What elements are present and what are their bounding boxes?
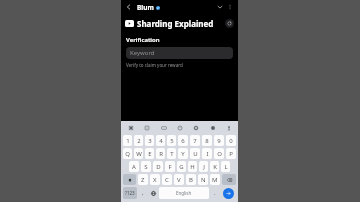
staticText: U — [193, 150, 198, 158]
button[interactable]: L — [221, 161, 230, 172]
staticText: 6 — [181, 137, 185, 145]
button[interactable]: Period — [211, 187, 219, 199]
button[interactable]: 4 — [156, 135, 165, 146]
button[interactable]: B — [186, 174, 196, 185]
staticText: W — [136, 150, 142, 158]
button[interactable]: 5 — [167, 135, 176, 146]
button[interactable]: ?123 — [123, 187, 137, 199]
staticText: 8 — [205, 137, 209, 145]
button[interactable]: G — [177, 161, 186, 172]
staticText: 5 — [170, 137, 174, 145]
staticText: ?123 — [125, 190, 135, 196]
button[interactable]: 0 — [226, 135, 236, 146]
button[interactable]: Stickers — [142, 123, 151, 132]
staticText: O — [217, 150, 222, 158]
button[interactable]: S — [141, 161, 151, 172]
staticText: J — [203, 163, 205, 171]
button[interactable]: Theme — [208, 123, 217, 132]
button[interactable]: 6 — [178, 135, 188, 146]
staticText: I — [206, 150, 209, 158]
button[interactable]: 1 — [123, 135, 132, 146]
button[interactable]: C — [162, 174, 172, 185]
staticText: 0 — [229, 137, 233, 145]
staticText: Q — [125, 150, 130, 158]
button[interactable]: V — [174, 174, 184, 185]
staticText: 9 — [217, 137, 221, 145]
button[interactable]: O — [214, 148, 224, 159]
button[interactable]: N — [198, 174, 208, 185]
button[interactable]: W — [134, 148, 143, 159]
staticText: E — [148, 150, 152, 158]
button[interactable]: Shift — [123, 174, 136, 185]
staticText: R — [159, 150, 163, 158]
staticText: . — [214, 189, 216, 197]
button[interactable]: 9 — [214, 135, 224, 146]
staticText: K — [213, 163, 217, 171]
button[interactable]: More options — [225, 2, 235, 12]
button[interactable]: 2 — [134, 135, 143, 146]
staticText: D — [156, 163, 161, 171]
staticText: L — [224, 163, 228, 171]
button[interactable]: P — [226, 148, 236, 159]
button[interactable]: English — [159, 187, 209, 199]
staticText: M — [212, 176, 218, 184]
staticText: Keyword — [130, 49, 155, 57]
staticText: X — [153, 176, 157, 184]
staticText: F — [168, 163, 172, 171]
staticText: S — [144, 163, 148, 171]
staticText: , — [142, 189, 144, 197]
button[interactable]: 7 — [190, 135, 200, 146]
button[interactable]: Comma — [139, 187, 147, 199]
button[interactable]: 3 — [145, 135, 154, 146]
button[interactable]: Refresh — [225, 19, 234, 28]
staticText: P — [229, 150, 233, 158]
button[interactable]: 8 — [202, 135, 212, 146]
button[interactable]: D — [153, 161, 163, 172]
button[interactable]: GIF — [159, 123, 168, 132]
staticText: English — [176, 190, 192, 196]
button[interactable]: Z — [138, 174, 148, 185]
button[interactable]: Enter — [223, 188, 234, 199]
button[interactable]: Y — [178, 148, 188, 159]
staticText: 3 — [148, 137, 152, 145]
button[interactable]: Q — [123, 148, 132, 159]
staticText: N — [201, 176, 206, 184]
button[interactable]: Expand — [215, 2, 225, 12]
button[interactable]: Keyword — [126, 47, 233, 59]
button[interactable]: M — [210, 174, 220, 185]
staticText: Y — [181, 150, 185, 158]
staticText: Sharding Explained — [137, 18, 214, 29]
button[interactable]: R — [156, 148, 165, 159]
button[interactable]: U — [190, 148, 200, 159]
staticText: Blum — [137, 3, 154, 12]
staticText: 1 — [126, 137, 130, 145]
staticText: H — [190, 163, 195, 171]
button[interactable]: Voice input — [224, 123, 233, 132]
button[interactable]: E — [145, 148, 154, 159]
button[interactable]: K — [210, 161, 219, 172]
staticText: A — [132, 163, 136, 171]
button[interactable]: F — [165, 161, 175, 172]
staticText: V — [177, 176, 181, 184]
button[interactable]: I — [202, 148, 212, 159]
button[interactable]: Clipboard — [126, 123, 135, 132]
button[interactable]: T — [167, 148, 176, 159]
button[interactable]: Emoji — [175, 123, 184, 132]
staticText: Verification — [126, 36, 160, 44]
staticText: 2 — [137, 137, 141, 145]
button[interactable]: Settings — [191, 123, 200, 132]
staticText: B — [189, 176, 193, 184]
button[interactable]: J — [199, 161, 208, 172]
staticText: G — [179, 163, 184, 171]
staticText: Verify to claim your reward — [126, 62, 183, 68]
staticText: T — [170, 150, 174, 158]
button[interactable]: A — [129, 161, 139, 172]
button[interactable]: H — [188, 161, 197, 172]
staticText: 7 — [193, 137, 197, 145]
staticText: Z — [141, 176, 145, 184]
button[interactable]: Change language — [149, 187, 157, 199]
button[interactable]: Blum — [137, 3, 160, 12]
button[interactable]: Backspace — [222, 174, 236, 185]
button[interactable]: X — [150, 174, 160, 185]
button[interactable]: Back — [124, 2, 134, 12]
